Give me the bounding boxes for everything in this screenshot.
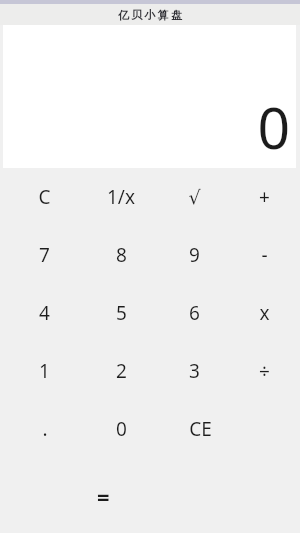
button[interactable]: -	[232, 226, 296, 284]
button[interactable]: 8	[86, 226, 156, 284]
staticText: √	[188, 186, 201, 208]
staticText: 7	[39, 242, 50, 268]
button[interactable]: 9	[156, 226, 232, 284]
staticText: 0	[257, 88, 290, 166]
staticText: CE	[189, 416, 212, 442]
staticText: .	[42, 416, 48, 442]
staticText: x	[259, 300, 270, 326]
staticText: 5	[116, 300, 127, 326]
staticText: 9	[189, 242, 200, 268]
button[interactable]: 4	[3, 284, 86, 342]
staticText: 6	[189, 300, 200, 326]
staticText: ÷	[259, 358, 270, 384]
button[interactable]: 6	[156, 284, 232, 342]
button[interactable]: +	[232, 168, 296, 226]
staticText: 亿贝小算盘	[117, 8, 183, 22]
button[interactable]: .	[3, 400, 86, 458]
button[interactable]: 1/x	[86, 168, 156, 226]
button[interactable]: x	[232, 284, 296, 342]
staticText: =	[97, 481, 110, 511]
button[interactable]: 5	[86, 284, 156, 342]
staticText: 3	[189, 358, 200, 384]
staticText: 8	[116, 242, 127, 268]
staticText: 2	[116, 358, 127, 384]
staticText: 1/x	[107, 184, 135, 210]
button[interactable]: √	[156, 168, 232, 226]
staticText: 0	[116, 416, 127, 442]
staticText: -	[261, 242, 268, 268]
staticText: 4	[39, 300, 50, 326]
staticText: +	[259, 184, 270, 210]
button[interactable]: Equals	[3, 458, 203, 533]
button[interactable]: 3	[156, 342, 232, 400]
button[interactable]: ÷	[232, 342, 296, 400]
button[interactable]: 2	[86, 342, 156, 400]
button[interactable]: C	[3, 168, 86, 226]
staticText: C	[38, 184, 51, 210]
button[interactable]: 1	[3, 342, 86, 400]
staticText: 1	[39, 358, 50, 384]
button[interactable]: 0	[86, 400, 156, 458]
button[interactable]: 7	[3, 226, 86, 284]
button[interactable]: CE	[130, 400, 270, 458]
